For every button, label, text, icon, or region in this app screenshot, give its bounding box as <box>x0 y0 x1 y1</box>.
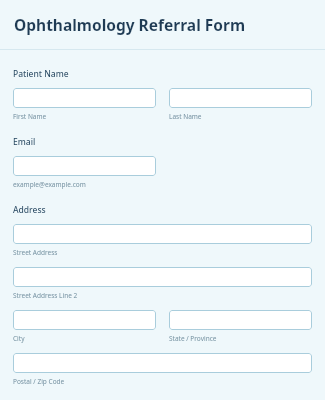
staticText: City <box>13 334 25 343</box>
staticText: Street Address Line 2 <box>13 291 78 300</box>
button[interactable] <box>169 88 312 108</box>
staticText: example@example.com <box>13 180 86 189</box>
button[interactable] <box>13 88 156 108</box>
staticText: Email <box>13 136 36 148</box>
button[interactable] <box>13 310 156 330</box>
staticText: State / Province <box>169 334 217 343</box>
staticText: First Name <box>13 112 47 121</box>
button[interactable] <box>169 310 312 330</box>
staticText: Address <box>13 204 46 216</box>
staticText: Street Address <box>13 248 58 257</box>
staticText: Patient Name <box>13 68 69 80</box>
button[interactable] <box>13 224 312 244</box>
staticText: Postal / Zip Code <box>13 377 65 386</box>
staticText: Last Name <box>169 112 202 121</box>
staticText: Ophthalmology Referral Form <box>14 14 246 35</box>
button[interactable] <box>13 267 312 287</box>
button[interactable] <box>13 353 312 373</box>
button[interactable] <box>13 156 156 176</box>
